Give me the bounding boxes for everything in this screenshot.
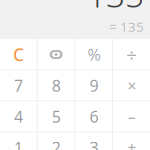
button[interactable]: Multiply	[113, 70, 150, 100]
staticText: 135	[87, 0, 144, 17]
button[interactable]: Delete	[38, 39, 75, 69]
button[interactable]: 1	[0, 132, 37, 150]
staticText: 2	[52, 137, 61, 150]
staticText: 6	[89, 106, 98, 127]
staticText: 4	[14, 106, 23, 127]
button[interactable]: 8	[38, 70, 75, 100]
staticText: = 135	[109, 18, 144, 35]
staticText: 3	[89, 137, 98, 150]
staticText: C	[13, 43, 24, 66]
button[interactable]: Minus	[113, 101, 150, 131]
button[interactable]: Plus	[113, 132, 150, 150]
staticText: ÷	[126, 42, 137, 67]
staticText: 8	[52, 75, 61, 96]
staticText: 7	[14, 75, 23, 96]
button[interactable]: 6	[75, 101, 112, 131]
button[interactable]: 5	[38, 101, 75, 131]
staticText: 5	[52, 106, 61, 127]
staticText: –	[128, 106, 136, 127]
button[interactable]: 9	[75, 70, 112, 100]
staticText: 1	[14, 137, 23, 150]
button[interactable]: 2	[38, 132, 75, 150]
button[interactable]: Percent	[75, 39, 112, 69]
staticText: ×	[127, 75, 136, 96]
button[interactable]: 4	[0, 101, 37, 131]
staticText: 9	[89, 75, 98, 96]
staticText: %	[87, 44, 100, 65]
button[interactable]: 7	[0, 70, 37, 100]
button[interactable]: Divide	[113, 39, 150, 69]
button[interactable]: 3	[75, 132, 112, 150]
button[interactable]: Clear	[0, 39, 37, 69]
staticText: +	[127, 137, 136, 150]
